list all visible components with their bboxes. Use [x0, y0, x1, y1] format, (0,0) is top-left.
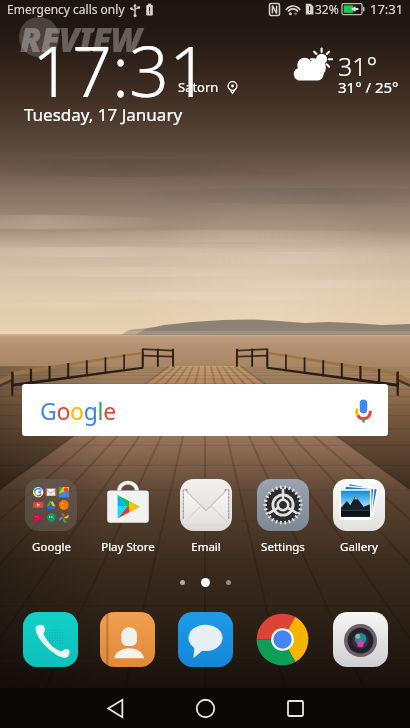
staticText: Play Store — [101, 539, 155, 555]
button[interactable]: Chrome — [255, 612, 310, 667]
staticText: REVIEW — [20, 17, 141, 62]
staticText: 31° / 25° — [338, 77, 399, 97]
staticText: Emergency calls only — [7, 1, 125, 17]
staticText: Tuesday, 17 January — [24, 103, 183, 126]
button[interactable]: Google — [25, 479, 77, 555]
button[interactable]: Google — [22, 384, 388, 436]
button[interactable]: Settings — [257, 479, 309, 555]
staticText: 17:31 — [32, 22, 209, 117]
staticText: Settings — [261, 539, 305, 555]
button[interactable]: Play Store — [101, 479, 155, 555]
button[interactable]: Camera — [333, 612, 388, 667]
button[interactable]: Contacts — [100, 612, 155, 667]
staticText: 17:31 — [370, 0, 404, 18]
staticText: 31° — [338, 49, 378, 83]
button[interactable]: Back — [70, 688, 160, 728]
button[interactable]: Gallery — [333, 479, 385, 555]
staticText: Google — [40, 395, 116, 426]
button[interactable]: Phone — [23, 612, 78, 667]
button[interactable]: Email — [180, 479, 232, 555]
staticText: Satorn — [178, 78, 219, 96]
button[interactable]: Home — [160, 688, 250, 728]
staticText: Gallery — [340, 539, 378, 555]
button[interactable]: Messages — [178, 612, 233, 667]
button[interactable]: Recent apps — [250, 688, 340, 728]
staticText: Email — [191, 539, 221, 555]
staticText: 32% — [315, 1, 339, 17]
staticText: Google — [32, 539, 71, 555]
